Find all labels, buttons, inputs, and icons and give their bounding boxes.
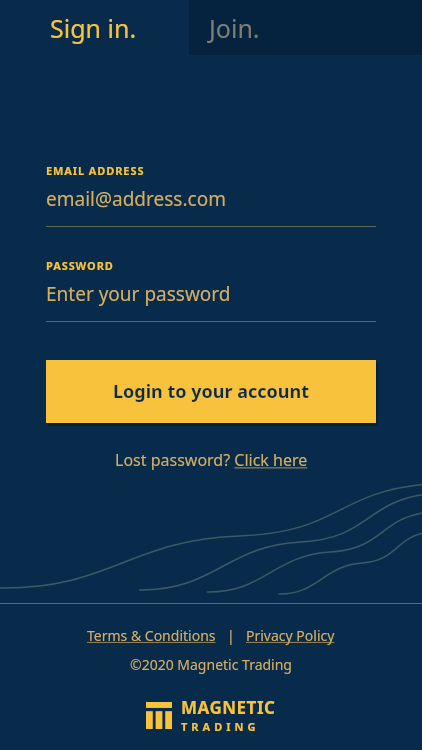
button[interactable]: Privacy Policy [246,626,335,645]
button[interactable]: Login to your account [46,360,376,423]
button[interactable]: Enter your password [46,281,376,307]
staticText: | [216,626,246,645]
staticText: PASSWORD [46,258,114,273]
other: Magnetic Trading logo [0,696,422,734]
staticText: Login to your account [113,379,309,404]
staticText: TRADING [181,719,260,734]
button[interactable]: Join. [189,0,422,55]
staticText: EMAIL ADDRESS [46,163,145,178]
button[interactable]: Sign in. [0,0,189,55]
staticText: Lost password? Click here [115,449,308,471]
staticText: Join. [209,11,260,45]
staticText: Sign in. [50,11,137,45]
staticText: ©2020 Magnetic Trading [130,655,292,674]
staticText: Enter your password [46,281,231,307]
staticText: Terms & Conditions [87,626,216,645]
button[interactable]: Terms & Conditions [87,626,216,645]
button[interactable]: Lost password? Click here [115,449,308,471]
button[interactable]: email@address.com [46,186,376,212]
staticText: email@address.com [46,186,226,212]
staticText: Privacy Policy [246,626,335,645]
staticText: MAGNETIC [181,696,276,719]
